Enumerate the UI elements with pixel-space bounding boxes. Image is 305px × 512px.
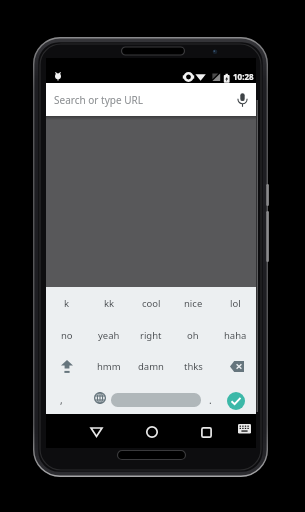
button[interactable] [138, 418, 166, 446]
staticText: 10:28 [233, 71, 254, 82]
button[interactable]: , [48, 382, 74, 414]
button[interactable]: damn [130, 350, 172, 382]
button[interactable]: oh [172, 319, 214, 351]
button[interactable] [82, 418, 110, 446]
button[interactable]: right [130, 319, 172, 351]
staticText: haha [224, 329, 247, 342]
staticText: yeah [98, 329, 120, 342]
button[interactable]: Search or type URL [46, 83, 256, 116]
button[interactable]: yeah [88, 319, 130, 351]
staticText: nice [184, 297, 203, 310]
button[interactable] [234, 417, 254, 441]
button[interactable]: thks [172, 350, 214, 382]
button[interactable] [46, 350, 88, 382]
button[interactable]: . [198, 382, 222, 414]
staticText: , [60, 393, 63, 407]
staticText: lol [230, 297, 241, 310]
button[interactable]: nice [172, 287, 214, 319]
button[interactable]: no [46, 319, 88, 351]
staticText: Search or type URL [54, 93, 143, 107]
staticText: right [140, 329, 162, 342]
button[interactable] [86, 382, 114, 414]
button[interactable]: haha [214, 319, 256, 351]
button[interactable] [192, 418, 220, 446]
staticText: damn [138, 360, 164, 373]
staticText: thks [184, 360, 203, 373]
button[interactable] [216, 350, 258, 382]
button[interactable]: k [46, 287, 88, 319]
button[interactable]: kk [88, 287, 130, 319]
staticText: kk [104, 297, 115, 310]
button[interactable] [227, 392, 245, 410]
staticText: . [209, 393, 212, 407]
button[interactable] [111, 393, 201, 407]
button[interactable]: cool [130, 287, 172, 319]
button[interactable]: lol [214, 287, 256, 319]
staticText: hmm [97, 360, 121, 373]
staticText: cool [142, 297, 161, 310]
staticText: no [61, 329, 73, 342]
button[interactable]: hmm [88, 350, 130, 382]
staticText: k [64, 297, 70, 310]
staticText: oh [187, 329, 199, 342]
